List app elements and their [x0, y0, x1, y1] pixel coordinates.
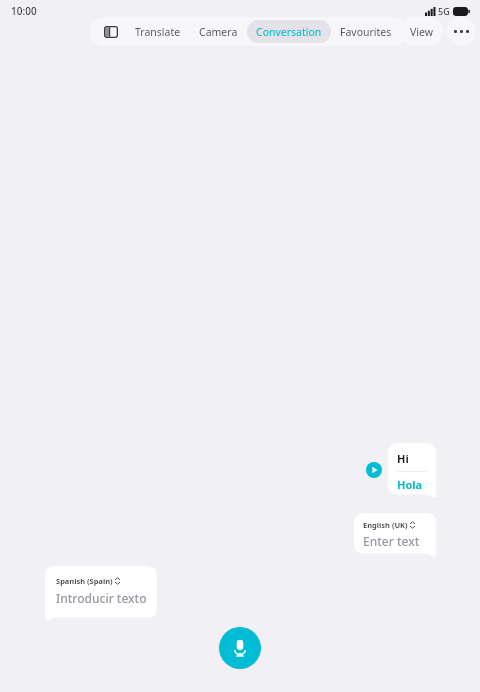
button[interactable]: View [400, 17, 443, 46]
staticText: Hola [397, 477, 423, 492]
staticText: Translate [135, 25, 181, 39]
staticText: Enter text [363, 533, 420, 549]
button[interactable]: English (UK) [354, 513, 436, 557]
staticText: 5G [438, 5, 450, 17]
button[interactable]: Translate [126, 20, 190, 43]
staticText: Camera [199, 25, 238, 39]
staticText: English (UK) [363, 520, 408, 530]
button[interactable]: Microphone [219, 627, 261, 669]
button[interactable]: Conversation [247, 20, 331, 43]
staticText: View [410, 25, 433, 39]
staticText: Spanish (Spain) [56, 576, 113, 586]
staticText: 10:00 [11, 4, 37, 18]
button[interactable]: Camera [190, 20, 247, 43]
button[interactable]: Favourites [331, 20, 401, 43]
staticText: Conversation [256, 25, 322, 39]
staticText: Hi [397, 451, 409, 466]
button[interactable]: Play translation [366, 462, 382, 478]
button[interactable]: Spanish (Spain) [45, 566, 157, 621]
staticText: Favourites [340, 25, 392, 39]
staticText: Introducir texto [56, 590, 147, 606]
button[interactable]: Toggle sidebar [99, 19, 123, 45]
button[interactable]: More options [447, 17, 476, 46]
